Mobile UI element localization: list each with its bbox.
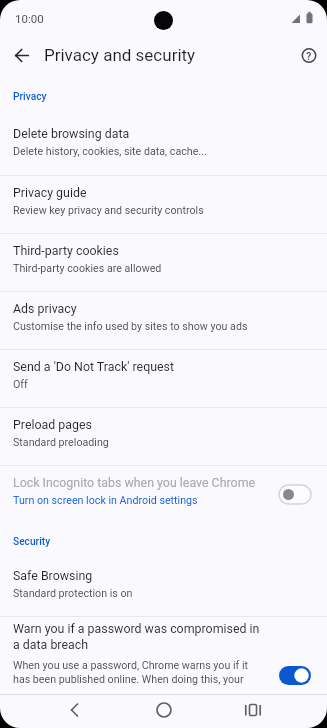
staticText: Lock Incognito tabs when you leave Chrom… — [13, 475, 256, 490]
staticText: Third-party cookies — [13, 243, 119, 258]
button[interactable] — [241, 698, 265, 722]
staticText: Delete browsing data — [13, 126, 130, 141]
button[interactable] — [279, 666, 311, 685]
button[interactable] — [10, 44, 34, 68]
staticText: Send a 'Do Not Track' request — [13, 359, 175, 374]
staticText: Security — [13, 536, 51, 548]
button[interactable]: Third-party cookies — [0, 234, 327, 291]
button[interactable] — [152, 698, 176, 722]
button[interactable]: Delete browsing data — [0, 117, 327, 175]
staticText: Off — [13, 378, 28, 391]
button[interactable]: Warn you if a password was compromised i… — [0, 617, 327, 694]
button[interactable]: Privacy guide — [0, 176, 327, 233]
staticText: Ads privacy — [13, 301, 77, 316]
button[interactable]: Send a 'Do Not Track' request — [0, 350, 327, 407]
button[interactable]: Safe Browsing — [0, 559, 327, 616]
staticText: Delete history, cookies, site data, cach… — [13, 145, 207, 158]
staticText: 10:00 — [15, 12, 44, 25]
staticText: Standard protection is on — [13, 587, 133, 600]
staticText: Standard preloading — [13, 436, 109, 449]
staticText: Preload pages — [13, 417, 92, 432]
staticText: Customise the info used by sites to show… — [13, 320, 248, 333]
button[interactable] — [279, 485, 311, 504]
staticText: Privacy guide — [13, 185, 87, 200]
button[interactable]: Preload pages — [0, 408, 327, 465]
staticText: Privacy — [13, 91, 47, 103]
button[interactable]: Ads privacy — [0, 292, 327, 349]
staticText: Third-party cookies are allowed — [13, 262, 162, 275]
staticText: Safe Browsing — [13, 568, 93, 583]
staticText: Privacy and security — [44, 45, 196, 65]
staticText: Warn you if a password was compromised i… — [13, 621, 263, 652]
button[interactable]: Lock Incognito tabs when you leave Chrom… — [0, 466, 327, 523]
button[interactable]: ? — [297, 44, 321, 68]
staticText: Review key privacy and security controls — [13, 204, 204, 217]
staticText: Turn on screen lock in Android settings — [13, 494, 198, 507]
staticText: ? — [306, 50, 312, 63]
staticText: When you use a password, Chrome warns yo… — [13, 659, 263, 685]
button[interactable] — [62, 698, 86, 722]
